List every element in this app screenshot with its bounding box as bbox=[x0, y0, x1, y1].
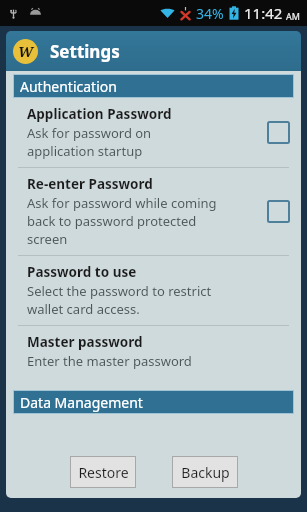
staticText: AM bbox=[286, 10, 300, 22]
staticText: application startup bbox=[27, 142, 143, 160]
button[interactable]: Authentication bbox=[13, 74, 294, 98]
staticText: Restore bbox=[78, 463, 129, 482]
staticText: Settings bbox=[50, 40, 120, 63]
staticText: Select the password to restrict bbox=[27, 282, 212, 300]
button[interactable]: Password to use bbox=[6, 256, 301, 325]
staticText: Ask for password while coming bbox=[27, 194, 217, 212]
staticText: Password to use bbox=[27, 263, 137, 281]
button[interactable]: Re-enter Password bbox=[268, 201, 289, 222]
staticText: 11:42 bbox=[244, 3, 283, 23]
staticText: Authentication bbox=[20, 77, 117, 96]
staticText: Data Management bbox=[20, 393, 143, 412]
staticText: Re-enter Password bbox=[27, 175, 153, 193]
button[interactable]: Re-enter Password bbox=[6, 168, 301, 255]
button[interactable]: Data Management bbox=[13, 390, 294, 414]
button[interactable]: Backup bbox=[172, 456, 238, 488]
button[interactable]: W bbox=[6, 31, 301, 71]
staticText: wallet card access. bbox=[27, 300, 140, 318]
button[interactable]: Application Password bbox=[6, 98, 301, 167]
staticText: screen bbox=[27, 230, 68, 248]
button[interactable]: Restore bbox=[70, 456, 136, 488]
staticText: 34% bbox=[196, 4, 224, 23]
button[interactable]: Application Password bbox=[268, 122, 289, 143]
staticText: Ask for password on bbox=[27, 124, 152, 142]
staticText: Master password bbox=[27, 333, 143, 351]
staticText: Enter the master password bbox=[27, 352, 192, 370]
staticText: W bbox=[18, 42, 33, 61]
staticText: back to password protected bbox=[27, 212, 197, 230]
staticText: Application Password bbox=[27, 105, 172, 123]
staticText: Backup bbox=[181, 463, 230, 482]
button[interactable]: Master password bbox=[6, 326, 301, 377]
